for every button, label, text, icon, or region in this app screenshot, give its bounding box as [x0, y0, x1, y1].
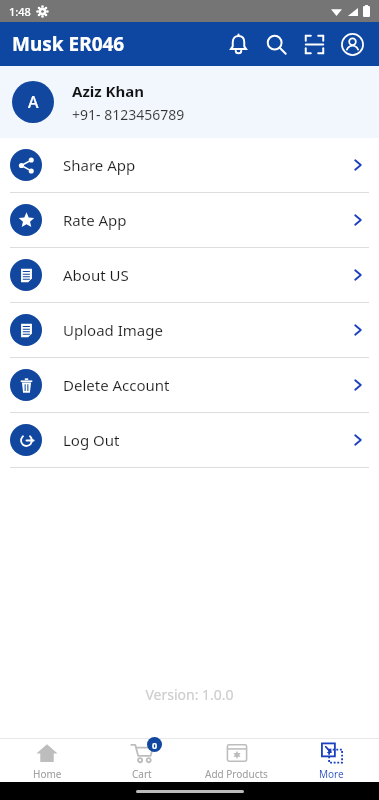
staticText: Home — [33, 767, 62, 781]
staticText: Share App — [63, 155, 136, 175]
button[interactable]: Search — [257, 25, 295, 63]
button[interactable]: A — [0, 66, 379, 138]
staticText: Delete Account — [63, 375, 170, 395]
button[interactable]: Notifications — [219, 25, 257, 63]
staticText: Musk ER046 — [12, 31, 125, 57]
button[interactable]: Upload Image — [0, 303, 379, 357]
staticText: Upload Image — [63, 320, 163, 340]
button[interactable]: Share App — [0, 138, 379, 192]
staticText: More — [319, 767, 344, 781]
staticText: Version: 1.0.0 — [0, 685, 379, 704]
staticText: 0 — [152, 739, 158, 751]
staticText: +91- 8123456789 — [72, 105, 185, 124]
staticText: A — [28, 91, 39, 113]
staticText: Rate App — [63, 210, 127, 230]
staticText: Aziz Khan — [72, 81, 145, 101]
button[interactable]: Log Out — [0, 413, 379, 467]
button[interactable]: Rate App — [0, 193, 379, 247]
button[interactable]: Add Products — [189, 739, 284, 782]
button[interactable]: Delete Account — [0, 358, 379, 412]
staticText: 1:48 — [9, 4, 31, 19]
button[interactable]: 0 — [94, 739, 189, 782]
button[interactable]: More — [284, 739, 379, 782]
button[interactable]: Home — [0, 739, 94, 782]
staticText: Log Out — [63, 430, 120, 450]
staticText: Add Products — [205, 767, 268, 781]
button[interactable]: Account — [333, 25, 371, 63]
staticText: Cart — [132, 767, 152, 781]
button[interactable]: Scan — [295, 25, 333, 63]
staticText: About US — [63, 265, 129, 285]
button[interactable]: About US — [0, 248, 379, 302]
